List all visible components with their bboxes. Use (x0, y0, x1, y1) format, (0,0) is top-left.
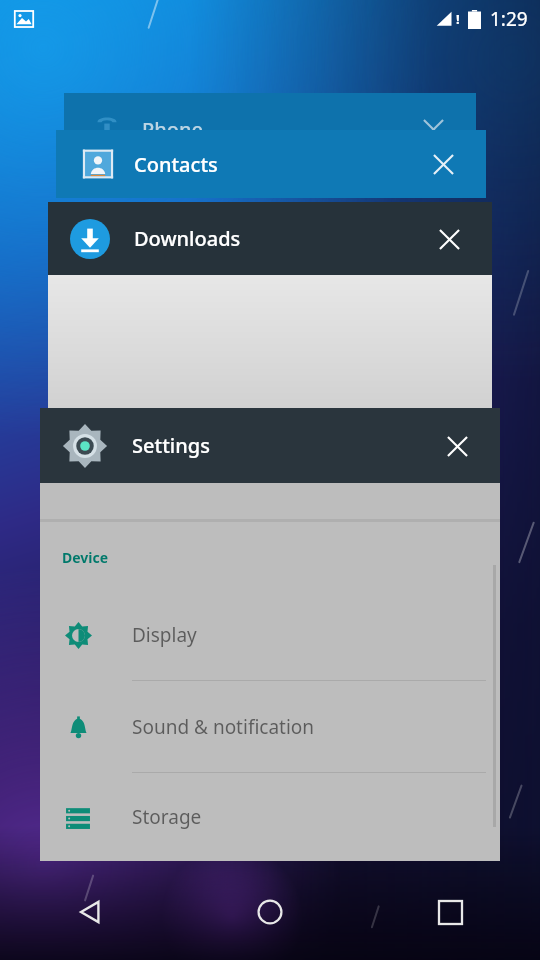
staticText: Phone (142, 116, 203, 143)
staticText: Storage (132, 804, 202, 830)
staticText: Device (62, 548, 109, 567)
staticText: Display (132, 622, 197, 648)
button[interactable]: Close Phone (416, 112, 450, 146)
staticText: Settings (132, 432, 210, 459)
staticText: 1:29 (490, 6, 528, 32)
button[interactable]: Close Downloads (432, 222, 466, 256)
button[interactable]: Display (40, 589, 500, 680)
button[interactable]: Downloads (48, 202, 492, 420)
button[interactable]: Home (180, 864, 360, 960)
button[interactable]: Close Settings (440, 429, 474, 463)
button[interactable]: Settings (40, 408, 500, 861)
button[interactable]: Sound & notification (40, 681, 500, 772)
button[interactable]: Close Contacts (426, 147, 460, 181)
staticText: ! (456, 10, 460, 28)
staticText: Sound & notification (132, 714, 315, 740)
staticText: Contacts (134, 151, 218, 178)
other: Screenshot notification (14, 9, 34, 29)
button[interactable]: Contacts (56, 130, 486, 198)
staticText: Downloads (134, 225, 241, 252)
button[interactable]: Back (0, 864, 180, 960)
button[interactable]: Storage (40, 773, 500, 861)
button[interactable]: Recent apps (360, 864, 540, 960)
button[interactable]: Phone (64, 93, 476, 165)
